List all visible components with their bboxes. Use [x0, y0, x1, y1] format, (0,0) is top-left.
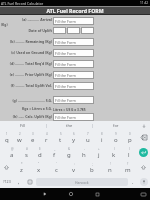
staticText: (f) ……… Total Uplift Vol. [10, 83, 52, 88]
staticText: x [37, 166, 41, 174]
button[interactable]: 8 [95, 130, 109, 145]
staticText: y [72, 136, 76, 144]
staticText: k [112, 151, 116, 159]
staticText: l [128, 151, 130, 159]
staticText: Fill the Form [55, 115, 76, 120]
button[interactable]: 5 [53, 130, 67, 145]
staticText: $ [39, 147, 41, 151]
button[interactable]: ? [119, 160, 137, 175]
button[interactable]: " [30, 160, 47, 175]
staticText: 8 [101, 132, 103, 136]
button[interactable]: . [128, 175, 137, 188]
staticText: 0 [129, 132, 131, 136]
button[interactable]: Voice input [140, 178, 148, 186]
staticText: 3 [32, 132, 34, 136]
staticText: j [98, 151, 100, 159]
button[interactable]: Backspace [137, 130, 150, 145]
staticText: + [98, 147, 100, 151]
staticText: (Kg) [1, 22, 8, 26]
button[interactable]: Fill the Form [53, 82, 94, 90]
staticText: s [25, 151, 28, 159]
staticText: 7 [87, 132, 89, 136]
staticText: . [132, 178, 134, 185]
staticText: for [113, 123, 119, 128]
staticText: ; [92, 162, 93, 166]
button[interactable]: 4 [39, 130, 53, 145]
staticText: ATL Fuel Record FORM [46, 7, 104, 14]
button[interactable]: , [14, 175, 24, 188]
staticText: 4 [46, 132, 48, 136]
button[interactable]: ' [47, 160, 65, 175]
button[interactable]: @ [5, 145, 19, 160]
button[interactable]: Fill the Form [53, 71, 94, 79]
staticText: w [17, 136, 22, 144]
staticText: Fill the Form [55, 73, 76, 78]
button[interactable]: 2 [13, 130, 26, 145]
staticText: g [67, 151, 71, 159]
staticText: (h) …… Calc. Uplift (Kg) [12, 114, 52, 119]
button[interactable]: Fill the Form [53, 96, 94, 104]
button[interactable]: Shift [137, 160, 150, 175]
staticText: f [53, 151, 56, 159]
button[interactable]: 7 [81, 130, 95, 145]
button[interactable]: Space [36, 178, 128, 186]
button[interactable]: + [91, 145, 106, 160]
button[interactable]: 3 [26, 130, 39, 145]
staticText: i [101, 136, 103, 144]
button[interactable]: Fill the Form [53, 38, 94, 46]
button[interactable]: Fill the Form [53, 113, 94, 121]
staticText: , [18, 178, 20, 185]
staticText: n [108, 166, 112, 174]
staticText: Kgs = Litres x S.G. [21, 106, 52, 111]
staticText: : [74, 162, 75, 166]
button[interactable]: ( [106, 145, 121, 160]
button[interactable]: Fill the Form [53, 49, 94, 57]
button[interactable]: & [61, 145, 76, 160]
button[interactable]: : [65, 160, 83, 175]
button[interactable]: ) [121, 145, 136, 160]
button[interactable]: * [13, 160, 30, 175]
staticText: Fill the Form [55, 19, 76, 24]
button[interactable] [53, 27, 66, 34]
staticText: Hancock [75, 180, 89, 185]
button[interactable]: - [76, 145, 91, 160]
button[interactable]: Shift [0, 160, 13, 175]
staticText: - [84, 147, 85, 151]
button[interactable]: ! [101, 160, 119, 175]
button[interactable]: Recent apps [84, 188, 110, 200]
button[interactable]: ; [83, 160, 101, 175]
button[interactable]: the [47, 121, 92, 130]
button[interactable]: Hide keyboard [136, 188, 150, 200]
button[interactable]: More suggestions [138, 121, 150, 130]
button[interactable] [81, 27, 94, 34]
staticText: p [128, 136, 132, 144]
button[interactable]: _ [47, 145, 61, 160]
staticText: ATL Fuel Record Calculator [1, 1, 44, 6]
button[interactable]: Enter [139, 148, 148, 157]
button[interactable]: 9 [109, 130, 123, 145]
button[interactable]: Emoji [24, 175, 36, 188]
button[interactable]: for [93, 121, 138, 130]
button[interactable] [67, 27, 80, 34]
staticText: Fill the Form [55, 40, 76, 45]
staticText: a [10, 151, 14, 159]
button[interactable]: ?123 [0, 175, 14, 188]
button[interactable]: Back [32, 188, 58, 200]
staticText: Fill the Form [55, 62, 76, 67]
button[interactable]: Fill the Form [53, 60, 94, 68]
button[interactable]: 0 [123, 130, 137, 145]
button[interactable]: 6 [67, 130, 81, 145]
button[interactable]: Fill [0, 121, 46, 130]
staticText: (b) ……… Remaining (Kg) [10, 39, 52, 44]
button[interactable]: 1 [0, 130, 13, 145]
staticText: ' [56, 162, 57, 166]
button[interactable]: # [19, 145, 33, 160]
button[interactable]: Home [58, 188, 84, 200]
staticText: ( [114, 147, 115, 151]
button[interactable]: Fill the Form [53, 17, 94, 25]
staticText: z [20, 166, 23, 174]
staticText: Fill the Form [55, 51, 76, 56]
button[interactable]: $ [33, 145, 47, 160]
staticText: the [66, 123, 73, 128]
staticText: e [31, 136, 35, 144]
